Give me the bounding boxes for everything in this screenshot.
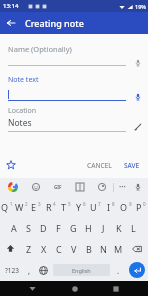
button[interactable]: Recent apps <box>106 281 125 296</box>
staticText: 9 <box>129 201 132 207</box>
button[interactable]: Shift <box>0 238 21 259</box>
button[interactable]: Enter <box>129 262 145 278</box>
button[interactable]: GIF <box>51 180 65 194</box>
staticText: 13:14 <box>3 2 19 10</box>
button[interactable]: Emoji <box>29 180 43 194</box>
button[interactable]: X <box>36 239 51 259</box>
staticText: ?123 <box>5 266 19 275</box>
button[interactable]: Themes <box>95 180 109 194</box>
staticText: 6 <box>83 201 86 207</box>
button[interactable]: D <box>36 218 51 238</box>
staticText: Name (Optionally) <box>8 44 72 54</box>
button[interactable]: Voice input note <box>132 91 144 103</box>
staticText: T <box>61 201 67 213</box>
button[interactable]: U <box>88 197 103 217</box>
staticText: Location <box>8 106 37 116</box>
staticText: F <box>56 222 61 234</box>
staticText: ••• <box>119 183 126 191</box>
staticText: L <box>131 222 136 234</box>
staticText: 7 <box>98 201 101 207</box>
button[interactable]: Y <box>73 197 88 217</box>
button[interactable]: K <box>111 218 126 238</box>
staticText: Notes <box>8 117 32 129</box>
button[interactable]: V <box>66 239 81 259</box>
button[interactable]: G <box>66 218 81 238</box>
button[interactable]: R <box>43 197 58 217</box>
staticText: G <box>70 222 77 234</box>
button[interactable]: Name (Optionally) <box>0 42 148 70</box>
button[interactable]: T <box>58 197 73 217</box>
staticText: 19% <box>135 3 146 10</box>
staticText: 1 <box>10 201 13 207</box>
button[interactable]: Note text <box>0 74 148 104</box>
button[interactable]: N <box>96 239 111 259</box>
button[interactable]: P <box>133 197 148 217</box>
button[interactable]: Back <box>0 12 22 34</box>
button[interactable]: Backspace <box>126 238 148 259</box>
button[interactable]: Location <box>0 106 148 136</box>
button[interactable]: More options <box>114 179 130 195</box>
button[interactable]: O <box>118 197 133 217</box>
button[interactable]: W <box>14 197 28 217</box>
staticText: 2 <box>25 201 28 207</box>
staticText: 0 <box>143 201 146 207</box>
staticText: CANCEL <box>87 161 112 170</box>
staticText: 4 <box>53 201 56 207</box>
staticText: A <box>11 222 17 234</box>
button[interactable]: Edit location <box>133 122 143 132</box>
button[interactable]: Change language <box>36 259 51 281</box>
button[interactable]: M <box>111 239 126 259</box>
button[interactable]: Comma <box>23 259 36 281</box>
button[interactable]: J <box>96 218 111 238</box>
button[interactable]: Q <box>0 197 14 217</box>
staticText: J <box>102 222 105 234</box>
staticText: GIF <box>54 184 62 190</box>
button[interactable]: C <box>51 239 66 259</box>
staticText: SAVE <box>124 161 140 170</box>
staticText: Q <box>1 201 9 213</box>
staticText: , <box>28 265 31 276</box>
button[interactable]: E <box>28 197 43 217</box>
button[interactable]: SAVE <box>118 157 148 174</box>
staticText: W <box>15 201 24 213</box>
staticText: P <box>136 201 142 213</box>
button[interactable]: Voice typing <box>130 179 146 195</box>
staticText: K <box>116 222 122 234</box>
button[interactable]: H <box>81 218 96 238</box>
staticText: D <box>40 222 47 234</box>
staticText: B <box>86 243 92 255</box>
button[interactable]: I <box>103 197 118 217</box>
button[interactable]: F <box>51 218 66 238</box>
staticText: . <box>117 265 120 276</box>
button[interactable]: B <box>81 239 96 259</box>
staticText: N <box>100 243 107 255</box>
button[interactable]: A <box>6 218 21 238</box>
button[interactable]: Favorite <box>0 154 22 176</box>
staticText: 3 <box>38 201 41 207</box>
staticText: S <box>26 222 31 234</box>
staticText: E <box>31 201 37 213</box>
button[interactable]: Back <box>23 281 42 296</box>
button[interactable]: ?123 <box>0 259 23 281</box>
staticText: H <box>85 222 92 234</box>
staticText: C <box>56 243 62 255</box>
staticText: R <box>46 201 52 213</box>
staticText: V <box>71 243 77 255</box>
button[interactable]: CANCEL <box>81 157 118 174</box>
staticText: U <box>90 201 97 213</box>
button[interactable]: English <box>53 264 110 276</box>
staticText: X <box>41 243 47 255</box>
button[interactable]: Home <box>65 281 84 296</box>
button[interactable]: Translate <box>73 180 87 194</box>
button[interactable]: Google search <box>5 179 21 195</box>
button[interactable]: Z <box>21 239 36 259</box>
staticText: Z <box>26 243 32 255</box>
button[interactable]: L <box>126 218 141 238</box>
button[interactable]: Period <box>112 259 125 281</box>
staticText: I <box>107 201 111 213</box>
button[interactable]: S <box>21 218 36 238</box>
button[interactable]: Voice input name <box>132 57 144 69</box>
staticText: O <box>120 201 128 213</box>
staticText: Creating note <box>25 17 84 29</box>
staticText: Note text <box>8 75 39 85</box>
